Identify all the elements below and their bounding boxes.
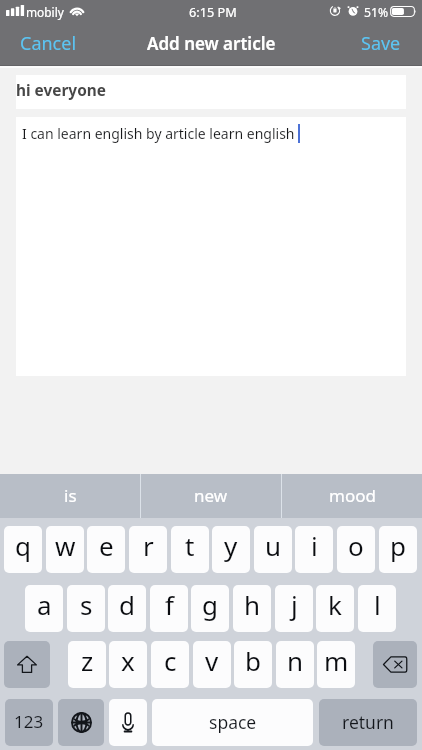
- button[interactable]: g: [191, 585, 229, 632]
- button[interactable]: c: [151, 641, 189, 688]
- button[interactable]: h: [233, 585, 271, 632]
- staticText: e: [99, 528, 114, 563]
- button[interactable]: w: [46, 526, 84, 573]
- staticText: mood: [329, 484, 376, 507]
- button[interactable]: u: [254, 526, 292, 573]
- staticText: is: [64, 484, 77, 507]
- staticText: z: [81, 643, 94, 678]
- button[interactable]: I can learn english by article learn eng…: [16, 117, 406, 376]
- button[interactable]: s: [67, 585, 105, 632]
- staticText: f: [165, 587, 174, 622]
- button[interactable]: p: [379, 526, 417, 573]
- staticText: hi everyone: [16, 80, 106, 101]
- button[interactable]: t: [171, 526, 209, 573]
- staticText: o: [348, 528, 364, 563]
- staticText: mobily: [26, 4, 64, 20]
- staticText: q: [15, 528, 31, 563]
- button[interactable]: Save: [353, 22, 409, 65]
- staticText: t: [185, 528, 195, 563]
- staticText: n: [287, 643, 304, 678]
- button[interactable]: Shift: [4, 641, 50, 688]
- staticText: i: [311, 528, 318, 563]
- button[interactable]: return: [319, 699, 417, 746]
- staticText: b: [245, 643, 261, 678]
- button[interactable]: a: [25, 585, 63, 632]
- staticText: y: [224, 528, 238, 563]
- staticText: Add new article: [147, 32, 276, 55]
- button[interactable]: new: [141, 474, 281, 518]
- staticText: 123: [14, 710, 44, 733]
- staticText: m: [324, 643, 349, 678]
- staticText: p: [390, 528, 406, 563]
- button[interactable]: space: [152, 699, 313, 746]
- staticText: l: [374, 587, 381, 622]
- staticText: r: [143, 528, 154, 563]
- staticText: 6:15 PM: [189, 3, 237, 20]
- staticText: s: [80, 587, 93, 622]
- staticText: u: [265, 528, 282, 563]
- button[interactable]: f: [150, 585, 188, 632]
- staticText: h: [244, 587, 261, 622]
- button[interactable]: e: [87, 526, 125, 573]
- staticText: a: [37, 587, 52, 622]
- button[interactable]: Dictation: [109, 699, 147, 746]
- button[interactable]: j: [275, 585, 313, 632]
- button[interactable]: i: [295, 526, 333, 573]
- staticText: new: [194, 484, 228, 507]
- button[interactable]: mood: [282, 474, 422, 518]
- staticText: 51%: [364, 4, 389, 21]
- staticText: x: [121, 643, 135, 678]
- button[interactable]: x: [109, 641, 147, 688]
- button[interactable]: Cancel: [12, 22, 85, 65]
- staticText: g: [202, 587, 218, 622]
- staticText: I can learn english by article learn eng…: [22, 124, 295, 143]
- staticText: v: [205, 643, 219, 678]
- button[interactable]: hi everyone: [16, 75, 406, 109]
- staticText: c: [164, 643, 177, 678]
- staticText: k: [328, 587, 342, 622]
- button[interactable]: 123: [5, 699, 53, 746]
- button[interactable]: k: [316, 585, 354, 632]
- button[interactable]: r: [129, 526, 167, 573]
- button[interactable]: y: [212, 526, 250, 573]
- button[interactable]: n: [276, 641, 314, 688]
- button[interactable]: d: [108, 585, 146, 632]
- staticText: Save: [361, 31, 401, 56]
- staticText: d: [119, 587, 135, 622]
- button[interactable]: b: [234, 641, 272, 688]
- button[interactable]: Backspace: [373, 641, 417, 688]
- staticText: Cancel: [20, 31, 77, 56]
- button[interactable]: o: [337, 526, 375, 573]
- staticText: space: [209, 710, 257, 734]
- button[interactable]: l: [358, 585, 396, 632]
- staticText: j: [291, 587, 298, 622]
- button[interactable]: z: [68, 641, 106, 688]
- button[interactable]: m: [317, 641, 355, 688]
- button[interactable]: q: [4, 526, 42, 573]
- button[interactable]: v: [193, 641, 231, 688]
- button[interactable]: Switch keyboard: [58, 699, 104, 746]
- staticText: w: [55, 528, 76, 563]
- staticText: return: [342, 710, 394, 734]
- button[interactable]: is: [0, 474, 140, 518]
